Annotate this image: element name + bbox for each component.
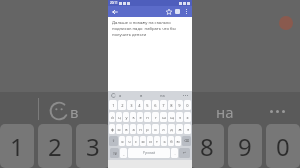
button[interactable]: 7 [160, 100, 167, 110]
staticText: т [156, 139, 158, 144]
staticText: 2 [48, 130, 62, 163]
staticText: 7 [162, 103, 165, 108]
staticText: х [186, 115, 189, 120]
button[interactable]: й [109, 112, 115, 122]
button[interactable]: п [137, 124, 143, 134]
staticText: ↵ [183, 151, 187, 155]
staticText: ч [128, 139, 131, 144]
button[interactable]: з [176, 112, 183, 122]
staticText: а [132, 127, 135, 132]
staticText: ц [118, 115, 121, 120]
staticText: 8 [170, 103, 173, 108]
button[interactable]: ↵ [179, 148, 190, 158]
button[interactable]: м [140, 136, 146, 146]
staticText: , [123, 151, 125, 156]
staticText: 8 [200, 130, 214, 163]
button[interactable]: о [152, 124, 159, 134]
staticText: э [187, 127, 189, 132]
button[interactable]: 0 [184, 100, 191, 110]
button[interactable]: Back [110, 7, 119, 16]
staticText: Дальше я покажу на сколько подписок надо… [112, 20, 188, 38]
button[interactable]: на [160, 93, 165, 98]
button[interactable]: ⌫ [182, 136, 191, 146]
button[interactable]: б [168, 136, 174, 146]
button[interactable]: 3 [127, 100, 135, 110]
staticText: ф [111, 127, 114, 132]
staticText: з [179, 115, 181, 120]
button[interactable]: н [144, 112, 151, 122]
button[interactable]: ⇧ [109, 136, 118, 146]
button[interactable]: э [184, 124, 191, 134]
button[interactable]: Favorite [164, 7, 173, 16]
staticText: в [125, 127, 128, 132]
staticText: о [154, 127, 157, 132]
button[interactable]: ш [160, 112, 167, 122]
staticText: и [149, 139, 152, 144]
button[interactable]: 4 [136, 100, 143, 110]
button[interactable]: т [154, 136, 160, 146]
button[interactable]: 2 [118, 100, 126, 110]
button[interactable]: , [120, 148, 127, 158]
staticText: м [141, 139, 145, 144]
button[interactable]: д [168, 124, 175, 134]
button[interactable]: р [144, 124, 151, 134]
staticText: й [111, 115, 114, 120]
staticText: р [146, 127, 149, 132]
staticText: ⇧ [112, 139, 116, 143]
button[interactable]: ч [126, 136, 132, 146]
staticText: 5 [146, 103, 149, 108]
button[interactable]: 1 [109, 100, 117, 110]
staticText: ю [176, 139, 180, 144]
button[interactable]: Русский [128, 148, 170, 158]
button[interactable]: ж [176, 124, 183, 134]
staticText: 3 [130, 103, 133, 108]
button[interactable]: а [130, 124, 136, 134]
button[interactable]: ю [175, 136, 181, 146]
button[interactable]: ь [161, 136, 167, 146]
staticText: ⌫ [184, 139, 190, 143]
button[interactable]: ц [116, 112, 122, 122]
staticText: у [125, 115, 128, 120]
staticText: 6 [154, 103, 157, 108]
staticText: на [216, 102, 234, 122]
button[interactable]: в [140, 93, 143, 98]
staticText: к [132, 115, 135, 120]
staticText: с [135, 139, 137, 144]
staticText: ы [117, 127, 121, 132]
button[interactable]: я [119, 93, 122, 98]
button[interactable]: в [123, 124, 129, 134]
staticText: н [146, 115, 149, 120]
staticText: . [174, 151, 176, 156]
staticText: в [70, 102, 79, 122]
staticText: ?# [113, 151, 117, 156]
button[interactable]: и [147, 136, 153, 146]
button[interactable]: 8 [168, 100, 175, 110]
staticText: 3 [86, 130, 100, 163]
button[interactable]: щ [168, 112, 175, 122]
staticText: 9 [178, 103, 181, 108]
button[interactable]: 9 [176, 100, 183, 110]
button[interactable]: к [130, 112, 136, 122]
button[interactable]: е [137, 112, 143, 122]
button[interactable]: More options [182, 7, 191, 16]
button[interactable]: г [152, 112, 159, 122]
staticText: щ [170, 115, 174, 120]
button[interactable]: с [133, 136, 139, 146]
staticText: д [170, 127, 173, 132]
staticText: Русский [143, 151, 156, 155]
button[interactable]: 6 [152, 100, 159, 110]
button[interactable]: ?# [110, 148, 119, 158]
button[interactable]: Sync [173, 7, 182, 16]
button[interactable]: ы [116, 124, 122, 134]
button[interactable]: Дальше я покажу на сколько подписок надо… [108, 17, 192, 91]
button[interactable]: л [160, 124, 167, 134]
staticText: 9 [238, 130, 252, 163]
staticText: 0 [186, 103, 189, 108]
staticText: ш [162, 115, 166, 120]
button[interactable]: я [119, 136, 125, 146]
button[interactable]: у [123, 112, 129, 122]
button[interactable]: . [171, 148, 178, 158]
button[interactable]: 5 [144, 100, 151, 110]
button[interactable]: ф [109, 124, 115, 134]
button[interactable]: х [184, 112, 191, 122]
